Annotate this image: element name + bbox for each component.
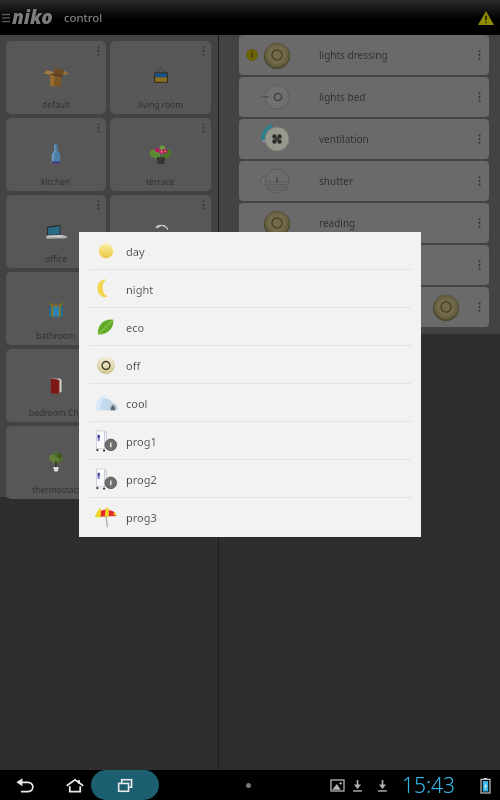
staticText: off <box>126 358 141 373</box>
button[interactable]: More options <box>239 287 489 327</box>
staticText: reading <box>319 216 356 230</box>
button[interactable]: lights dressing <box>239 35 489 75</box>
button[interactable]: More options <box>239 245 489 285</box>
button[interactable]: night <box>79 270 421 308</box>
staticText: bathroom <box>36 330 76 342</box>
button[interactable] <box>110 272 211 345</box>
button[interactable]: bedroom Chr <box>6 349 106 422</box>
button[interactable]: Recent apps <box>105 770 145 800</box>
button[interactable]: office <box>6 195 106 268</box>
button[interactable]: shutter <box>239 161 489 201</box>
button[interactable]: cool <box>79 384 421 422</box>
staticText: prog1 <box>126 434 157 449</box>
button[interactable]: More options <box>469 119 489 159</box>
button[interactable]: bathroom <box>6 272 106 345</box>
staticText: prog2 <box>126 472 157 487</box>
button[interactable]: More options <box>469 245 489 285</box>
button[interactable]: More options <box>469 35 489 75</box>
button[interactable]: prog2 <box>79 460 421 498</box>
button[interactable]: More options <box>469 77 489 117</box>
button[interactable]: Screenshot <box>327 770 347 800</box>
staticText: office <box>45 253 68 265</box>
button[interactable]: default <box>6 41 106 114</box>
staticText: control <box>64 10 103 26</box>
staticText: shutter <box>319 174 354 188</box>
staticText: lights dressing <box>319 48 388 62</box>
button[interactable]: More options <box>469 161 489 201</box>
button[interactable]: prog3 <box>79 498 421 536</box>
button[interactable]: More options <box>469 203 489 243</box>
button[interactable]: More options <box>469 287 489 327</box>
button[interactable]: eco <box>79 308 421 346</box>
staticText: living room <box>138 99 184 111</box>
staticText: niko <box>12 4 53 30</box>
staticText: lights bed <box>319 90 366 104</box>
staticText: bedroom Chr <box>29 407 83 419</box>
button[interactable]: ventilation <box>239 119 489 159</box>
button[interactable]: Download <box>372 770 392 800</box>
button[interactable]: kitchen <box>6 118 106 191</box>
staticText: ventilation <box>319 132 369 146</box>
button[interactable]: living room <box>110 41 211 114</box>
staticText: prog3 <box>126 510 157 525</box>
button[interactable]: Back <box>5 770 45 800</box>
button[interactable] <box>110 195 211 268</box>
button[interactable]: day <box>79 232 421 537</box>
staticText: eco <box>126 320 145 335</box>
button[interactable] <box>110 349 211 422</box>
staticText: day <box>126 244 145 259</box>
staticText: cool <box>126 396 148 411</box>
button[interactable]: Download <box>347 770 367 800</box>
button[interactable]: thermostats <box>6 426 106 499</box>
staticText: night <box>126 282 154 297</box>
button[interactable]: prog1 <box>79 422 421 460</box>
button[interactable]: terrace <box>110 118 211 191</box>
button[interactable]: day <box>79 232 421 270</box>
staticText: terrace <box>146 176 175 188</box>
staticText: 15:43 <box>402 771 456 800</box>
staticText: kitchen <box>41 176 71 188</box>
staticText: thermostats <box>32 484 81 496</box>
staticText: default <box>42 99 71 111</box>
button[interactable]: Warning <box>472 0 500 35</box>
button[interactable] <box>110 426 211 499</box>
button[interactable]: lights bed <box>239 77 489 117</box>
button[interactable]: off <box>79 346 421 384</box>
button[interactable]: Menu <box>0 0 13 35</box>
button[interactable]: reading <box>239 203 489 243</box>
button[interactable]: Home <box>55 770 95 800</box>
